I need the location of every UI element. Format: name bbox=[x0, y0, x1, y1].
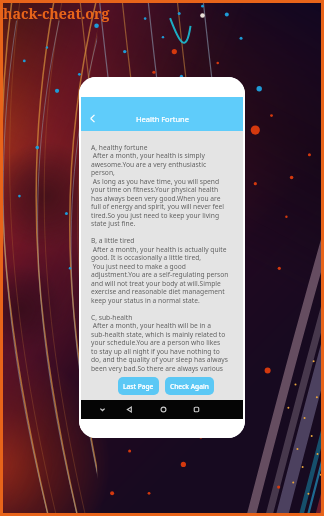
staticText: sub-health state, which is mainly relate… bbox=[91, 330, 226, 339]
button[interactable]: Hide keyboard bbox=[98, 405, 107, 414]
staticText: Last Page bbox=[123, 382, 154, 391]
button[interactable]: Back bbox=[125, 405, 134, 414]
staticText: B, a little tired bbox=[91, 236, 135, 245]
staticText: has always been very good.When you are bbox=[91, 194, 221, 203]
staticText: A, healthy fortune bbox=[91, 143, 148, 152]
staticText: and will not treat your body at will.Sim… bbox=[91, 279, 221, 288]
staticText: C, sub-health bbox=[91, 313, 133, 322]
staticText: After a month, your health will be in a bbox=[91, 321, 211, 330]
staticText: exercise and reasonable diet management bbox=[91, 287, 225, 296]
staticText: tired.So you just need to keep your livi… bbox=[91, 211, 220, 220]
staticText: full of energy and spirit, you will neve… bbox=[91, 202, 225, 211]
staticText: You just need to make a good bbox=[91, 262, 186, 271]
staticText: adjustment.You are a self-regulating per… bbox=[91, 270, 229, 279]
button[interactable]: Back bbox=[81, 106, 103, 131]
staticText: keep your status in a normal state. bbox=[91, 296, 200, 305]
staticText: Health Fortune bbox=[136, 114, 189, 124]
staticText: As long as you have time, you will spend bbox=[91, 177, 220, 186]
staticText: do, and the quality of your sleep has al… bbox=[91, 355, 228, 364]
staticText: Check Again bbox=[170, 382, 209, 391]
staticText: good. It is occasionally a little tired, bbox=[91, 253, 202, 262]
staticText: to stay up all night if you have nothing… bbox=[91, 347, 220, 356]
button[interactable]: Home bbox=[159, 405, 168, 414]
staticText: awesome.You are a very enthusiastic bbox=[91, 160, 207, 169]
button[interactable]: Check Again bbox=[165, 377, 214, 395]
staticText: state just fine. bbox=[91, 219, 136, 228]
staticText: your schedule.You are a person who likes bbox=[91, 338, 221, 347]
button[interactable]: Recents bbox=[192, 405, 201, 414]
staticText: your time on fitness.Your physical healt… bbox=[91, 185, 219, 194]
staticText: hack-cheat.org bbox=[3, 4, 110, 23]
staticText: After a month, your health is simply bbox=[91, 151, 205, 160]
staticText: After a month, your health is actually q… bbox=[91, 245, 227, 254]
staticText: been very bad.So there are always variou… bbox=[91, 364, 224, 373]
button[interactable]: Last Page bbox=[118, 377, 159, 395]
staticText: person, bbox=[91, 168, 115, 177]
